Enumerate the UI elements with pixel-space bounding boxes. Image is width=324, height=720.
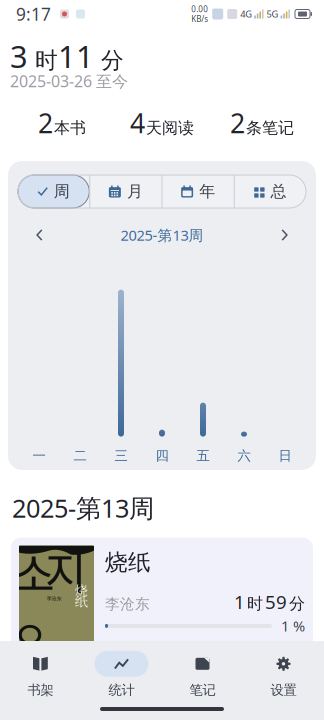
staticText: 设置 (270, 682, 296, 698)
staticText: 四 (155, 448, 168, 464)
button[interactable]: 笔记 (162, 652, 243, 697)
staticText: 时 (247, 594, 263, 614)
staticText: 5G (267, 8, 279, 20)
staticText: 日 (278, 448, 291, 464)
staticText: 时 (28, 46, 58, 74)
staticText: 条笔记 (246, 118, 294, 138)
staticText: KB/s (191, 13, 208, 24)
button[interactable]: 设置 (243, 652, 324, 697)
staticText: 2025-第13周 (120, 225, 203, 245)
staticText: 4G (240, 8, 252, 20)
button[interactable]: 月 (90, 175, 161, 208)
staticText: 9:17 (16, 2, 51, 25)
staticText: 3 (10, 36, 28, 76)
staticText: 年 (199, 182, 215, 201)
staticText: 纸 (74, 591, 87, 610)
button[interactable]: 上一周 (31, 224, 48, 246)
button[interactable]: 总 (235, 175, 306, 208)
staticText: 2025-03-26 至今 (10, 70, 128, 92)
staticText: 分 (289, 594, 305, 614)
button[interactable]: 统计 (81, 652, 162, 697)
button[interactable]: 年 (162, 175, 234, 208)
staticText: 本书 (54, 118, 86, 138)
staticText: 分 (94, 46, 124, 74)
staticText: 一 (32, 448, 45, 464)
staticText: 59 (265, 589, 287, 614)
staticText: 2025-第13周 (12, 491, 154, 525)
staticText: 11 (58, 36, 94, 76)
staticText: 周 (54, 182, 70, 201)
staticText: ㅇ (11, 604, 48, 662)
staticText: 总 (271, 182, 287, 201)
button[interactable]: 周 (18, 175, 89, 208)
staticText: 李沧东 (105, 595, 150, 613)
staticText: 소 (13, 539, 55, 604)
staticText: 2 (38, 105, 53, 141)
staticText: 烧 (74, 580, 87, 599)
staticText: 书架 (27, 682, 53, 698)
staticText: 笔记 (189, 682, 215, 698)
staticText: 五 (196, 448, 209, 464)
staticText: 李沧东 (46, 595, 61, 602)
button[interactable]: 下一周 (276, 224, 293, 246)
staticText: 4 (130, 105, 145, 141)
staticText: 六 (237, 448, 250, 464)
staticText: 2 (230, 105, 245, 141)
staticText: 二 (73, 448, 86, 464)
staticText: 烧纸 (105, 549, 151, 576)
button[interactable]: 소 (0, 525, 324, 654)
staticText: 统计 (108, 682, 134, 698)
staticText: 지 (45, 537, 87, 602)
staticText: 1 % (281, 616, 305, 636)
staticText: 0.00 (191, 4, 208, 14)
staticText: 1 (234, 589, 245, 614)
staticText: 月 (127, 182, 143, 201)
staticText: 天阅读 (146, 118, 194, 138)
staticText: 三 (114, 448, 127, 464)
button[interactable]: 书架 (0, 652, 81, 697)
